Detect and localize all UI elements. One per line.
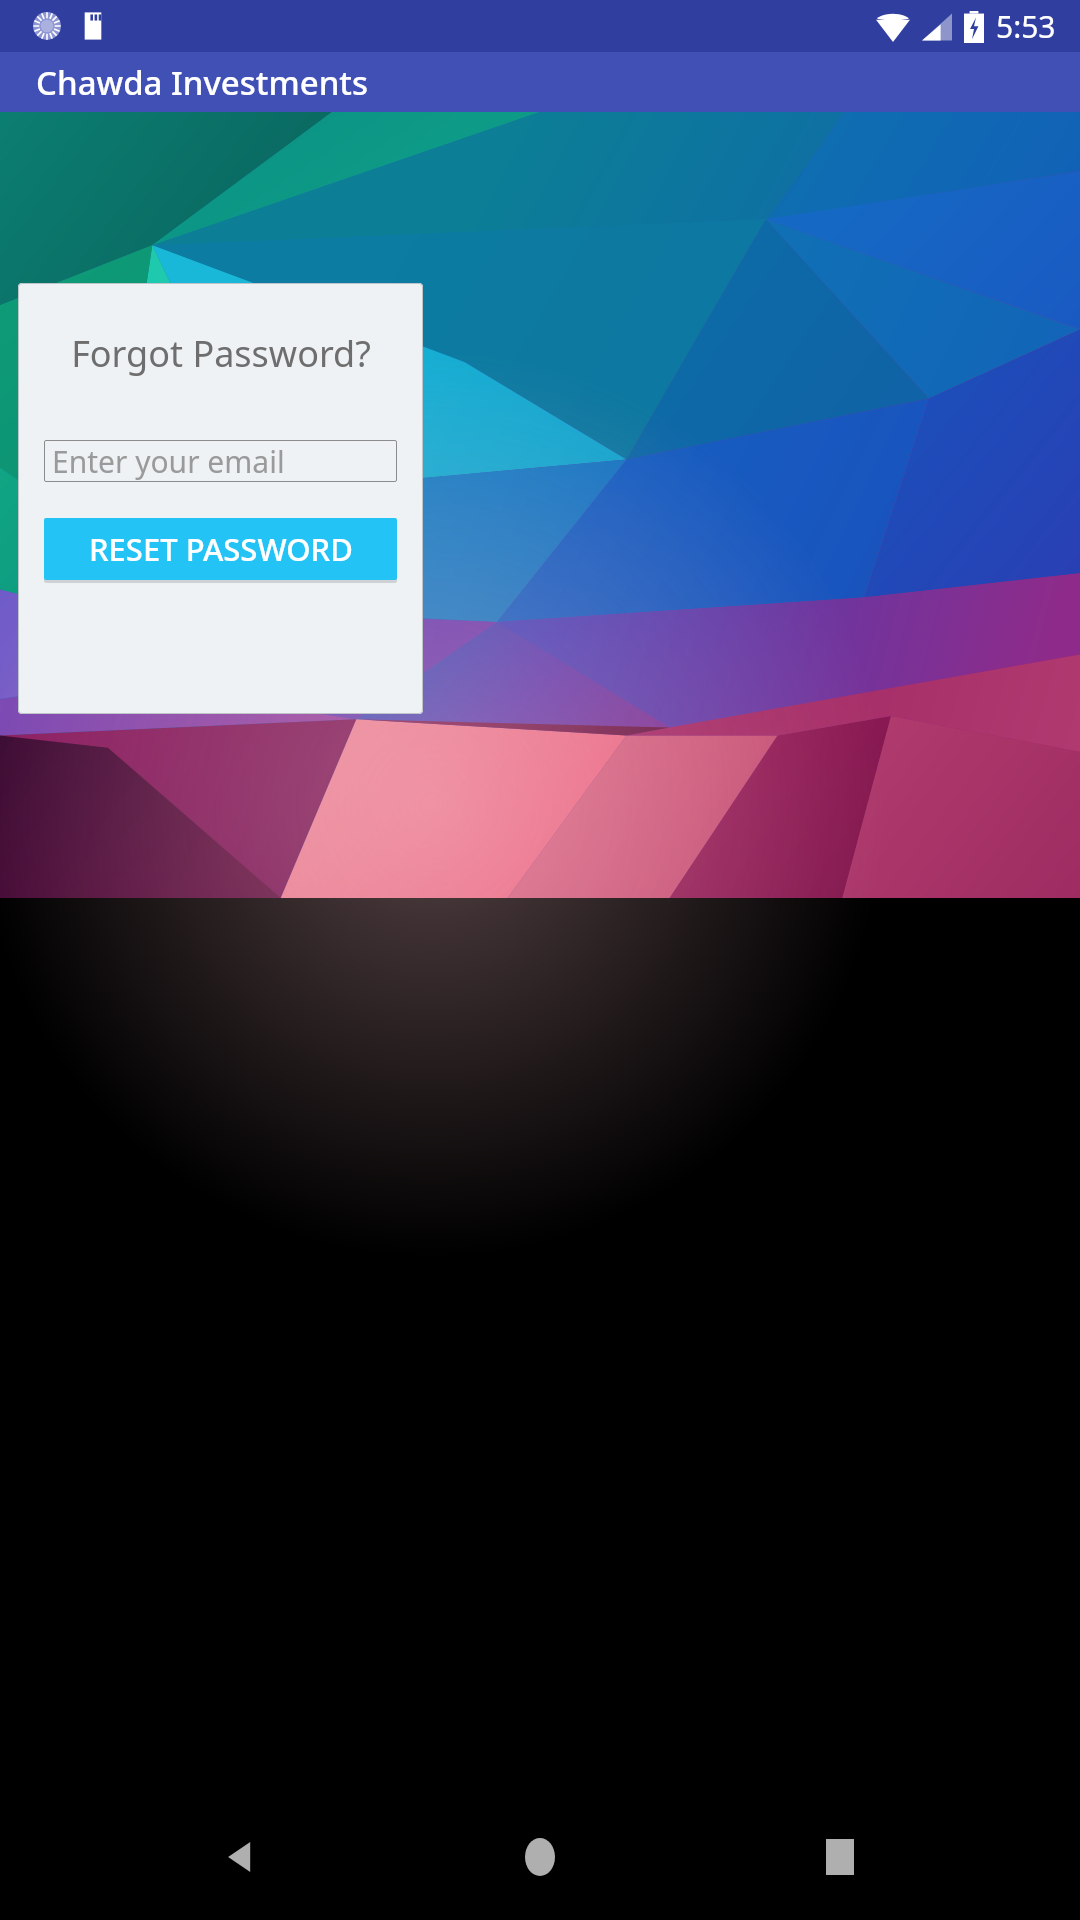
button[interactable]: Recent apps [790, 1807, 890, 1907]
staticText: Forgot Password? [71, 329, 371, 378]
staticText: 5:53 [996, 6, 1056, 47]
staticText: RESET PASSWORD [89, 528, 353, 570]
staticText: Chawda Investments [36, 60, 369, 105]
staticText: Enter your email [52, 441, 285, 482]
button[interactable]: Enter your email [44, 440, 397, 482]
button[interactable]: Back [190, 1807, 290, 1907]
button[interactable]: Home [490, 1807, 590, 1907]
button[interactable]: RESET PASSWORD [44, 518, 397, 580]
